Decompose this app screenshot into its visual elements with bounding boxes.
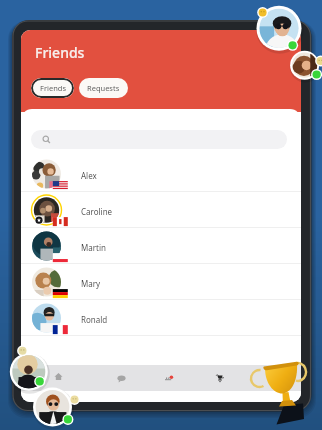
button[interactable]: Martin — [21, 228, 301, 264]
button[interactable]: Leaderboard — [207, 365, 233, 391]
button[interactable]: Notifications — [156, 365, 182, 391]
staticText: Requests — [87, 83, 120, 93]
button[interactable]: Search — [31, 130, 287, 149]
button[interactable]: Caroline — [21, 192, 301, 228]
staticText: Martin — [81, 242, 106, 253]
staticText: Alex — [81, 170, 97, 181]
staticText: Friends — [35, 43, 85, 62]
button[interactable]: Messages — [108, 365, 134, 391]
button[interactable]: Alex — [21, 156, 301, 192]
staticText: Friends — [40, 83, 66, 93]
button[interactable]: Friends — [31, 78, 74, 98]
button[interactable]: Mary — [21, 264, 301, 300]
button[interactable]: Requests — [79, 78, 128, 98]
staticText: Ronald — [81, 314, 108, 325]
staticText: Caroline — [81, 206, 113, 217]
staticText: Mary — [81, 278, 101, 289]
button[interactable]: Ronald — [21, 300, 301, 336]
button[interactable]: Home — [45, 363, 71, 389]
